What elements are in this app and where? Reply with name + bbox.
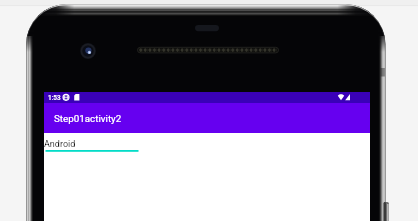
staticText: 1:53 <box>48 94 61 102</box>
button[interactable]: Step01activity2 <box>44 103 370 133</box>
button[interactable]: Android <box>44 136 139 152</box>
staticText: Step01activity2 <box>54 113 122 124</box>
staticText: Android <box>44 139 76 150</box>
